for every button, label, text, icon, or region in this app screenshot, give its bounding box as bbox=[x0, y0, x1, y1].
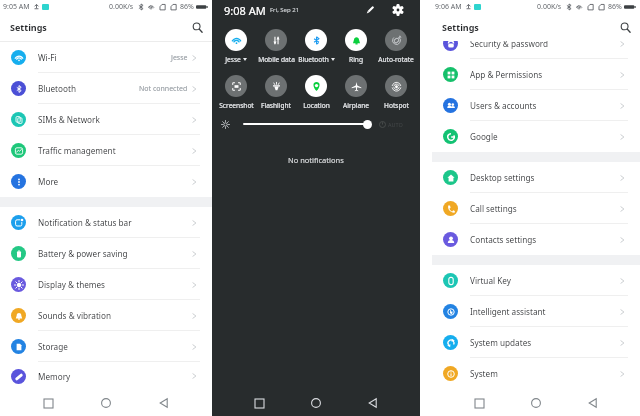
staticText: 0.00K/s bbox=[109, 2, 134, 12]
staticText: Desktop settings bbox=[470, 172, 535, 183]
staticText: Settings bbox=[442, 21, 479, 33]
staticText: Users & accounts bbox=[470, 100, 537, 111]
button[interactable] bbox=[265, 75, 287, 97]
staticText: Call settings bbox=[470, 203, 517, 214]
button[interactable]: Recents bbox=[249, 393, 269, 413]
staticText: Not connected bbox=[139, 84, 188, 94]
staticText: Display & themes bbox=[38, 279, 106, 290]
staticText: SIMs & Network bbox=[38, 114, 100, 125]
staticText: Sounds & vibration bbox=[38, 310, 111, 321]
button[interactable]: Settings bbox=[390, 2, 406, 18]
button[interactable]: Desktop settings bbox=[432, 162, 640, 193]
staticText: Location bbox=[303, 101, 330, 110]
staticText: Jesse bbox=[171, 53, 188, 63]
button[interactable]: Display & themes bbox=[0, 269, 212, 300]
staticText: More bbox=[38, 176, 59, 187]
button[interactable]: System bbox=[432, 358, 640, 389]
staticText: Airplane bbox=[343, 101, 369, 110]
button[interactable] bbox=[225, 29, 247, 51]
staticText: Flashlight bbox=[261, 101, 291, 110]
staticText: System updates bbox=[470, 337, 532, 348]
staticText: AUTO bbox=[388, 121, 403, 128]
button[interactable]: Intelligent assistant bbox=[432, 296, 640, 327]
button[interactable]: Recents bbox=[469, 393, 489, 413]
button[interactable] bbox=[345, 75, 367, 97]
button[interactable]: Security & password bbox=[432, 28, 640, 59]
button[interactable]: Sounds & vibration bbox=[0, 300, 212, 331]
button[interactable]: Traffic management bbox=[0, 135, 212, 166]
staticText: Security & password bbox=[470, 38, 549, 49]
button[interactable]: SIMs & Network bbox=[0, 104, 212, 135]
button[interactable]: Virtual Key bbox=[432, 265, 640, 296]
staticText: Wi-Fi bbox=[38, 52, 57, 63]
button[interactable]: Home bbox=[526, 393, 546, 413]
staticText: Fri, Sep 21 bbox=[270, 6, 300, 14]
button[interactable]: AUTO bbox=[212, 117, 420, 131]
button[interactable]: Call settings bbox=[432, 193, 640, 224]
staticText: Jesse bbox=[225, 55, 241, 64]
staticText: 86% bbox=[608, 2, 622, 12]
button[interactable] bbox=[305, 75, 327, 97]
staticText: Traffic management bbox=[38, 145, 116, 156]
button[interactable]: Bluetooth bbox=[0, 73, 212, 104]
staticText: No notifications bbox=[288, 155, 344, 165]
button[interactable] bbox=[305, 29, 327, 51]
staticText: Intelligent assistant bbox=[470, 306, 546, 317]
button[interactable]: Search bbox=[188, 18, 206, 36]
staticText: Google bbox=[470, 131, 498, 142]
button[interactable]: Storage bbox=[0, 331, 212, 362]
button[interactable] bbox=[225, 75, 247, 97]
button[interactable]: Contacts settings bbox=[432, 224, 640, 255]
button[interactable]: More bbox=[0, 166, 212, 197]
staticText: App & Permissions bbox=[470, 69, 543, 80]
staticText: Settings bbox=[10, 21, 47, 33]
staticText: Notification & status bar bbox=[38, 217, 132, 228]
staticText: Bluetooth bbox=[298, 55, 329, 64]
button[interactable]: App & Permissions bbox=[432, 59, 640, 90]
button[interactable]: Search bbox=[616, 18, 634, 36]
button[interactable]: Battery & power saving bbox=[0, 238, 212, 269]
staticText: Contacts settings bbox=[470, 234, 537, 245]
button[interactable]: Memory bbox=[0, 362, 212, 390]
staticText: Storage bbox=[38, 341, 68, 352]
staticText: Hotspot bbox=[384, 101, 409, 110]
button[interactable]: System updates bbox=[432, 327, 640, 358]
button[interactable]: Notification & status bar bbox=[0, 207, 212, 238]
staticText: 86% bbox=[180, 2, 194, 12]
button[interactable]: Wi-Fi bbox=[0, 42, 212, 73]
staticText: System bbox=[470, 368, 498, 379]
button[interactable]: Users & accounts bbox=[432, 90, 640, 121]
button[interactable] bbox=[385, 75, 407, 97]
staticText: Virtual Key bbox=[470, 275, 511, 286]
button[interactable]: Back bbox=[363, 393, 383, 413]
button[interactable] bbox=[265, 29, 287, 51]
staticText: Bluetooth bbox=[38, 83, 76, 94]
staticText: Battery & power saving bbox=[38, 248, 128, 259]
staticText: Screenshot bbox=[219, 101, 254, 110]
staticText: Mobile data bbox=[258, 55, 295, 64]
staticText: 9:05 AM bbox=[3, 2, 30, 12]
button[interactable]: Recents bbox=[38, 393, 58, 413]
button[interactable] bbox=[345, 29, 367, 51]
button[interactable]: Home bbox=[306, 393, 326, 413]
staticText: 9:06 AM bbox=[435, 2, 462, 12]
staticText: 9:08 AM bbox=[224, 3, 266, 18]
button[interactable] bbox=[385, 29, 407, 51]
staticText: Memory bbox=[38, 371, 71, 382]
button[interactable]: Home bbox=[96, 393, 116, 413]
button[interactable]: Edit bbox=[362, 2, 378, 18]
button[interactable]: Back bbox=[154, 393, 174, 413]
staticText: Ring bbox=[349, 55, 363, 64]
button[interactable]: Back bbox=[583, 393, 603, 413]
staticText: 0.00K/s bbox=[537, 2, 562, 12]
staticText: Auto-rotate bbox=[378, 55, 414, 64]
button[interactable]: Google bbox=[432, 121, 640, 152]
